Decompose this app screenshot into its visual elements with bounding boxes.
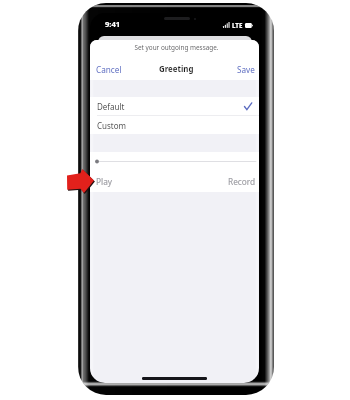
staticText: Record [228, 176, 256, 187]
button[interactable]: Default [90, 97, 259, 115]
staticText: Default [97, 101, 125, 112]
staticText: Set your outgoing message. [92, 43, 259, 52]
staticText: Play [96, 176, 113, 187]
staticText: 9:41 [105, 19, 121, 29]
other: Pointer arrow [67, 169, 94, 193]
button[interactable]: Cancel [90, 61, 130, 78]
button[interactable]: Custom [90, 116, 259, 134]
staticText: Greeting [159, 64, 194, 75]
button[interactable]: Save [229, 61, 259, 78]
button[interactable]: Play [90, 172, 119, 191]
staticText: Cancel [96, 64, 122, 75]
button[interactable]: Record [222, 172, 259, 191]
staticText: LTE [232, 21, 243, 29]
staticText: Custom [97, 120, 127, 131]
staticText: Save [237, 64, 255, 75]
